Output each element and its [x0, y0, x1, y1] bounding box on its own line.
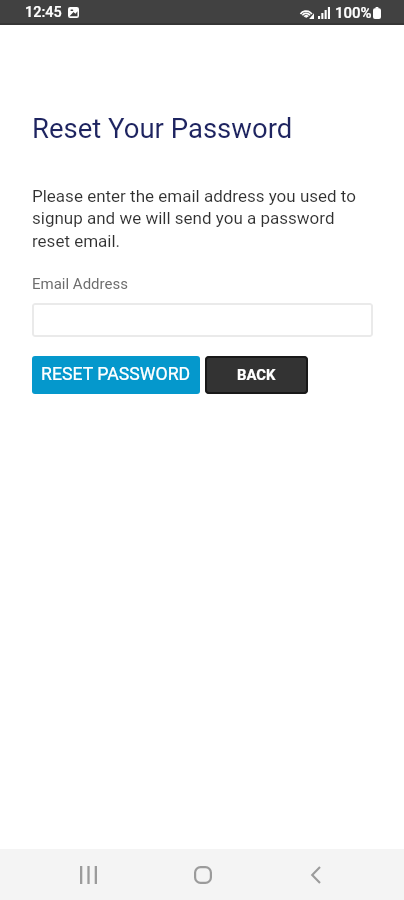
staticText: Email Address	[32, 275, 128, 293]
staticText: Reset Your Password	[32, 112, 293, 144]
button[interactable]: BACK	[205, 356, 308, 394]
staticText: BACK	[237, 366, 276, 383]
button[interactable]: Home	[168, 849, 237, 900]
staticText: 100%	[335, 4, 372, 22]
staticText: Please enter the email address you used …	[32, 186, 373, 251]
staticText: 12:45	[25, 4, 62, 21]
button[interactable]: Back	[281, 849, 350, 900]
button[interactable]: RESET PASSWORD	[32, 356, 200, 394]
button[interactable]: Email Address input	[32, 303, 373, 337]
staticText: RESET PASSWORD	[41, 364, 191, 385]
button[interactable]: Recents	[54, 849, 123, 900]
